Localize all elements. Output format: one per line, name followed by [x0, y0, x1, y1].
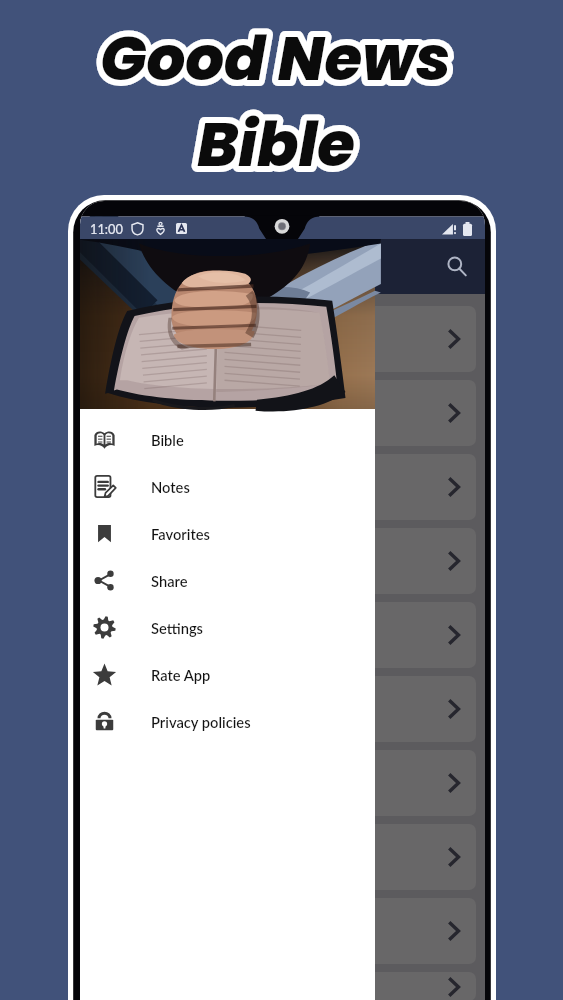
- staticText: 11:00: [90, 221, 123, 236]
- staticText: Notes: [151, 478, 190, 496]
- button[interactable]: Settings: [80, 604, 375, 651]
- button[interactable]: Favorites: [80, 510, 375, 557]
- staticText: Bible: [197, 102, 355, 187]
- button[interactable]: [89, 528, 476, 594]
- staticText: Good News: [100, 16, 451, 101]
- button[interactable]: Share: [80, 557, 375, 604]
- button[interactable]: [89, 972, 476, 1000]
- button[interactable]: [89, 306, 476, 372]
- staticText: Bible: [151, 431, 184, 449]
- staticText: Privacy policies: [151, 713, 251, 731]
- button[interactable]: Notes: [80, 463, 375, 510]
- button[interactable]: [89, 676, 476, 742]
- staticText: Rate App: [151, 666, 211, 684]
- staticText: Settings: [151, 619, 204, 637]
- button[interactable]: [89, 898, 476, 964]
- button[interactable]: [89, 380, 476, 446]
- staticText: Share: [151, 572, 188, 590]
- button[interactable]: Rate App: [80, 651, 375, 698]
- button[interactable]: [89, 824, 476, 890]
- staticText: Favorites: [151, 525, 210, 543]
- button[interactable]: Search: [440, 250, 474, 284]
- button[interactable]: Bible: [80, 416, 375, 463]
- button[interactable]: Privacy policies: [80, 698, 375, 745]
- staticText: Good News: [100, 16, 451, 101]
- staticText: Bible: [197, 102, 355, 187]
- button[interactable]: [89, 750, 476, 816]
- button[interactable]: [89, 602, 476, 668]
- button[interactable]: [89, 454, 476, 520]
